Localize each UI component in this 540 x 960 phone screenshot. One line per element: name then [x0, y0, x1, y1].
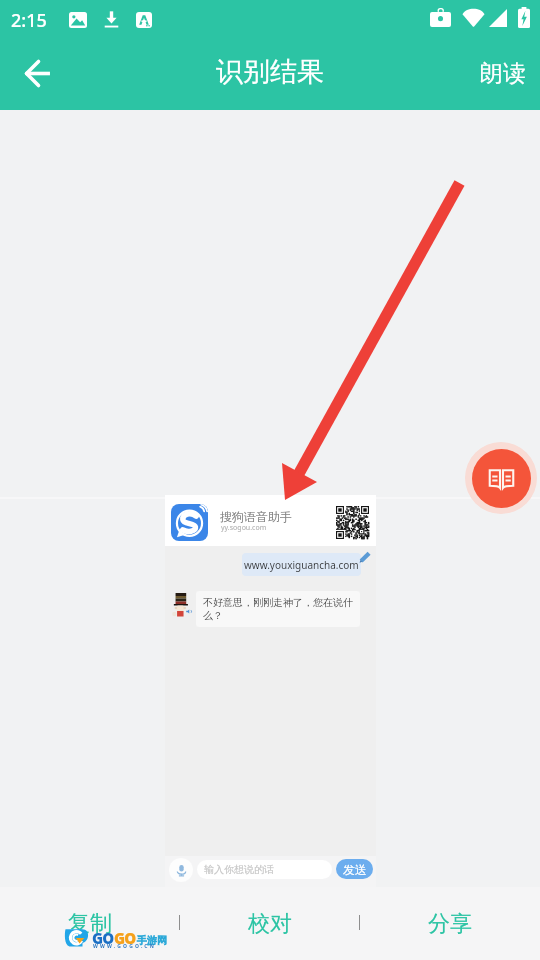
staticText: GO — [92, 928, 114, 948]
staticText: 不好意思，刚刚走神了，您在说什么？ — [203, 596, 354, 622]
staticText: 分享 — [428, 910, 472, 938]
staticText: GO — [114, 928, 136, 948]
staticText: 输入你想说的话 — [204, 863, 274, 876]
button[interactable]: 发送 — [336, 859, 373, 879]
staticText: 搜狗语音助手 — [220, 509, 292, 524]
staticText: yy.sogou.com — [221, 523, 267, 533]
staticText: 识别结果 — [216, 55, 324, 89]
staticText: WWW.GOGO.CN — [93, 943, 156, 950]
staticText: 手游网 — [137, 934, 167, 947]
staticText: 复制 — [68, 910, 112, 938]
button[interactable]: 朗读 — [462, 47, 540, 100]
button[interactable]: 输入你想说的话 — [197, 860, 332, 879]
staticText: www.youxiguancha.com — [244, 558, 359, 572]
staticText: 发送 — [343, 862, 367, 877]
button[interactable]: Voice input — [169, 858, 193, 882]
button[interactable]: 分享 — [360, 887, 540, 960]
button[interactable]: www.youxiguancha.com — [242, 553, 361, 576]
button[interactable]: 校对 — [180, 887, 360, 960]
staticText: 2:15 — [11, 8, 47, 33]
button[interactable]: 复制 — [0, 887, 180, 960]
button[interactable]: Read aloud — [472, 449, 531, 508]
staticText: 朗读 — [480, 59, 526, 88]
staticText: 校对 — [248, 910, 292, 938]
button[interactable]: Back — [13, 49, 62, 98]
